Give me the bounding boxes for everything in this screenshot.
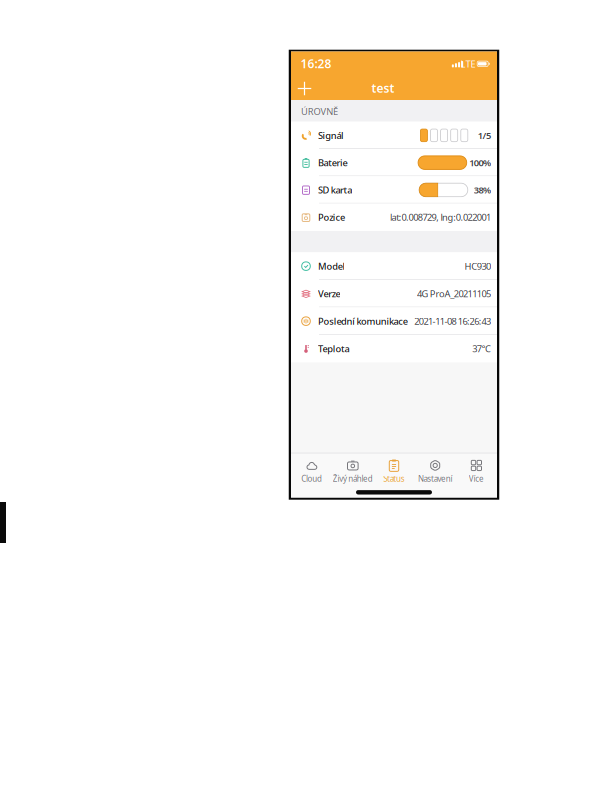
button[interactable]: Cloud: [291, 456, 332, 486]
button[interactable]: Nastavení: [415, 456, 456, 486]
staticText: Cloud: [301, 473, 322, 484]
staticText: Status: [383, 473, 405, 484]
staticText: Živý náhled: [333, 473, 373, 484]
button[interactable]: Živý náhled: [332, 456, 373, 486]
staticText: Model: [318, 260, 345, 272]
button[interactable]: Add: [298, 82, 311, 95]
staticText: Poslední komunikace: [318, 315, 408, 327]
staticText: Nastavení: [418, 473, 452, 484]
staticText: 37°C: [472, 342, 491, 355]
staticText: 2021-11-08 16:26:43: [414, 315, 491, 327]
staticText: HC930: [465, 260, 491, 272]
staticText: lat:0.008729, lng:0.022001: [390, 211, 491, 223]
staticText: SD karta: [318, 184, 352, 196]
staticText: 38%: [474, 184, 491, 196]
staticText: test: [371, 80, 394, 96]
button[interactable]: Status: [373, 456, 415, 486]
staticText: Pozice: [318, 211, 345, 223]
staticText: 100%: [469, 156, 491, 169]
staticText: ÚROVNĚ: [301, 105, 338, 118]
staticText: Baterie: [318, 156, 348, 169]
staticText: LTE: [460, 58, 475, 70]
staticText: 4G ProA_20211105: [417, 287, 491, 300]
staticText: Verze: [318, 287, 340, 300]
staticText: 16:28: [300, 55, 331, 71]
staticText: 1/5: [478, 129, 491, 142]
staticText: Signál: [318, 129, 344, 142]
button[interactable]: Více: [456, 456, 497, 486]
staticText: Více: [469, 473, 484, 484]
staticText: Teplota: [318, 342, 350, 355]
